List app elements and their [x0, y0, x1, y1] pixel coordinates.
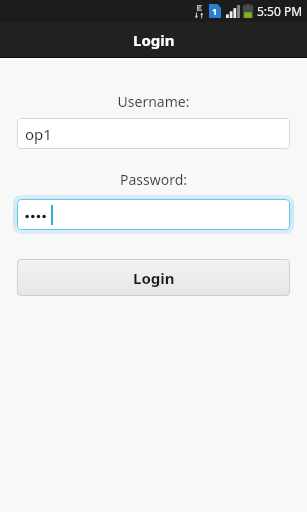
button[interactable]: Login — [17, 259, 290, 296]
staticText: 1 — [212, 5, 218, 17]
staticText: 5:50 PM — [257, 3, 303, 19]
button[interactable] — [13, 195, 294, 234]
staticText: Username: — [0, 92, 307, 111]
staticText: Login — [133, 268, 175, 288]
staticText: op1 — [25, 124, 52, 144]
staticText: Password: — [0, 170, 307, 189]
staticText: Login — [133, 30, 175, 50]
button[interactable]: op1 — [17, 118, 290, 149]
